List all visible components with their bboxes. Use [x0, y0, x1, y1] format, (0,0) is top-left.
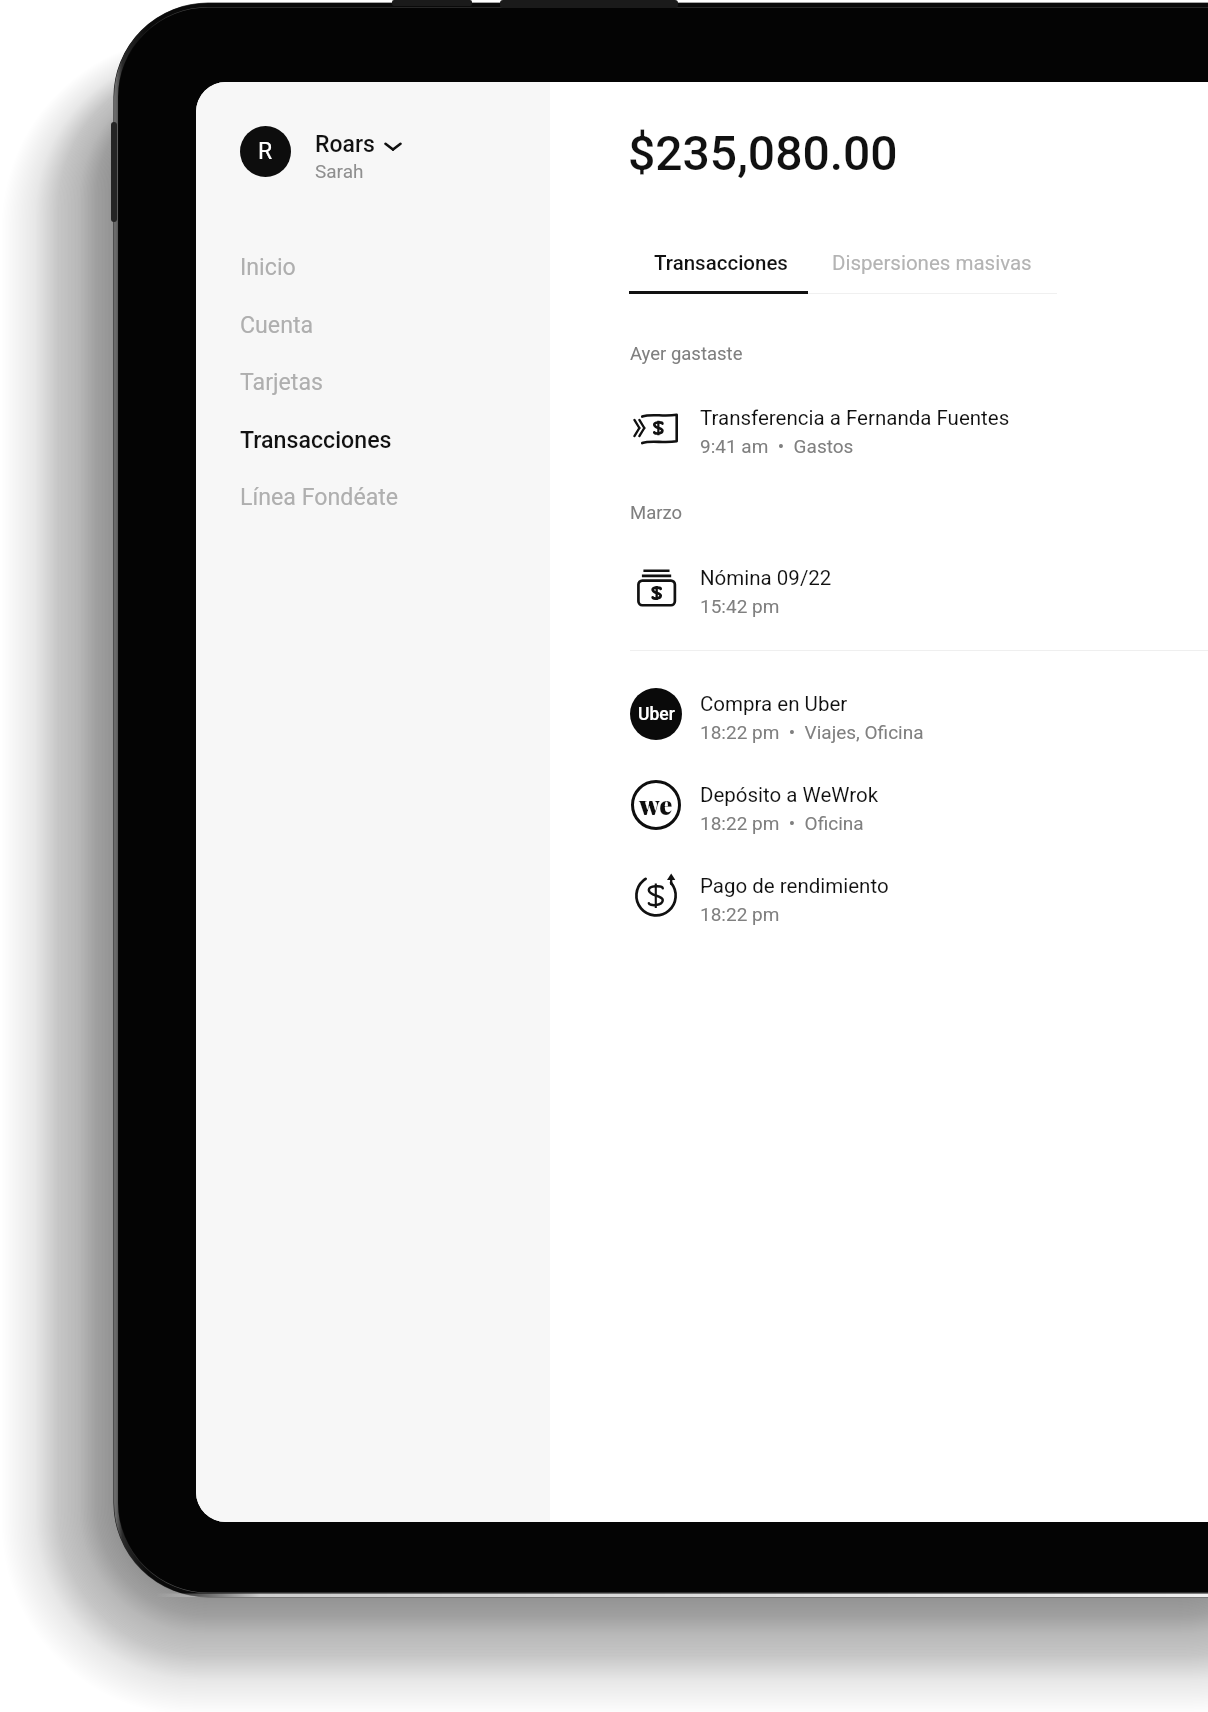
staticText: $235,080.00: [628, 125, 898, 181]
staticText: Marzo: [630, 502, 683, 524]
other: Yield payment: [630, 870, 682, 922]
button[interactable]: Línea Fondéate: [196, 468, 550, 524]
button[interactable]: Inicio: [196, 238, 550, 294]
button[interactable]: Uber: [630, 681, 1208, 753]
button[interactable]: Yield payment: [630, 863, 1208, 935]
staticText: 18:22 pm • Viajes, Oficina: [700, 721, 924, 743]
staticText: Nómina 09/22: [700, 566, 832, 590]
staticText: Ayer gastaste: [630, 343, 743, 365]
staticText: we: [639, 787, 673, 822]
button[interactable]: we: [630, 772, 1208, 844]
button[interactable]: Tarjetas: [196, 353, 550, 409]
staticText: R: [258, 138, 273, 165]
staticText: Transferencia a Fernanda Fuentes: [700, 406, 1010, 430]
other: Transfer: [630, 402, 682, 454]
staticText: Compra en Uber: [700, 692, 848, 716]
staticText: Transacciones: [654, 251, 788, 275]
button[interactable]: Transacciones: [632, 237, 810, 289]
staticText: 18:22 pm • Oficina: [700, 812, 864, 834]
staticText: 9:41 am • Gastos: [700, 435, 854, 457]
staticText: 15:42 pm: [700, 595, 780, 617]
staticText: Pago de rendimiento: [700, 874, 889, 898]
button[interactable]: Payroll: [630, 555, 1208, 627]
button[interactable]: Transacciones: [196, 411, 550, 467]
button[interactable]: Cuenta: [196, 296, 550, 352]
staticText: Línea Fondéate: [240, 483, 399, 510]
staticText: 18:22 pm: [700, 903, 780, 925]
staticText: Sarah: [315, 160, 364, 182]
staticText: Transacciones: [240, 426, 392, 453]
staticText: Dispersiones masivas: [832, 251, 1032, 275]
staticText: Uber: [638, 704, 675, 725]
staticText: Inicio: [240, 253, 296, 280]
button[interactable]: R: [240, 126, 401, 177]
button[interactable]: Dispersiones masivas: [810, 237, 1054, 289]
other: Payroll: [630, 562, 682, 614]
button[interactable]: Transfer: [630, 395, 1208, 467]
staticText: Tarjetas: [240, 368, 324, 395]
staticText: Roars: [315, 131, 375, 158]
staticText: Cuenta: [240, 311, 314, 338]
staticText: Depósito a WeWrok: [700, 783, 879, 807]
